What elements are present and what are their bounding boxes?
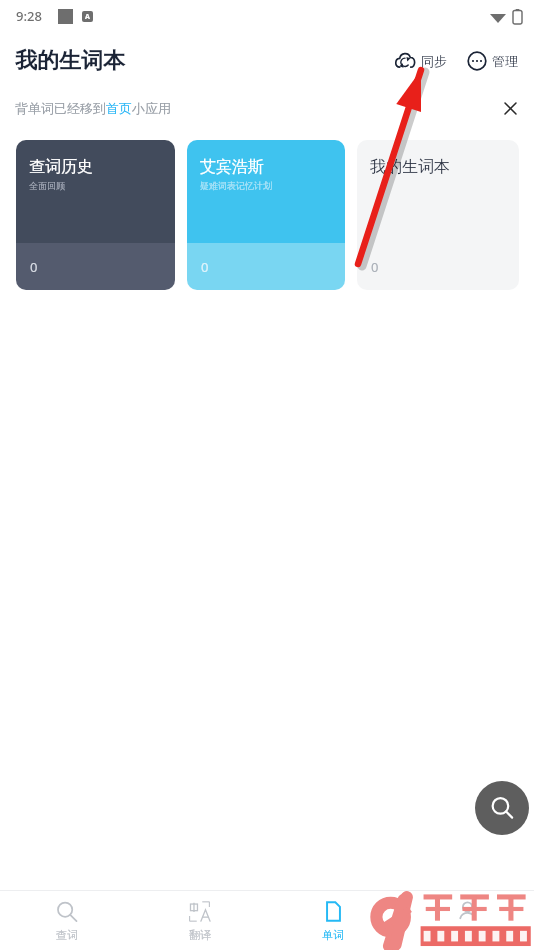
button[interactable]: 我的 bbox=[400, 891, 534, 950]
staticText: 查词 bbox=[56, 928, 78, 942]
button[interactable]: 查词 bbox=[0, 891, 133, 950]
staticText: 0 bbox=[201, 258, 209, 276]
staticText: 0 bbox=[30, 258, 38, 276]
button[interactable]: 翻译 bbox=[133, 891, 266, 950]
staticText: 我的 bbox=[456, 928, 478, 942]
staticText: 我的生词本 bbox=[370, 157, 450, 177]
staticText: 0 bbox=[371, 258, 379, 276]
staticText: 管理 bbox=[492, 53, 518, 69]
staticText: 全面回顾 bbox=[29, 180, 65, 191]
staticText: A bbox=[85, 12, 90, 22]
button[interactable]: 管理 bbox=[464, 47, 521, 75]
button[interactable]: 同步 bbox=[391, 46, 450, 76]
staticText: 小应用 bbox=[132, 100, 171, 116]
staticText: 翻译 bbox=[189, 928, 211, 942]
button[interactable]: 查词历史 bbox=[16, 140, 175, 290]
staticText: 单词 bbox=[322, 928, 344, 942]
button[interactable]: 我的生词本 bbox=[357, 140, 519, 290]
button[interactable]: Close bbox=[494, 92, 526, 124]
staticText: 同步 bbox=[421, 53, 447, 69]
staticText: 背单词已经移到 bbox=[15, 100, 106, 116]
staticText: 艾宾浩斯 bbox=[200, 157, 264, 177]
staticText: 9:28 bbox=[16, 7, 42, 25]
staticText: 查词历史 bbox=[29, 157, 93, 177]
button[interactable]: Search bbox=[475, 781, 529, 835]
button[interactable]: 首页 bbox=[106, 100, 132, 116]
button[interactable]: 艾宾浩斯 bbox=[187, 140, 345, 290]
staticText: 我的生词本 bbox=[15, 47, 125, 75]
staticText: 疑难词表记忆计划 bbox=[200, 180, 272, 191]
button[interactable]: 单词 bbox=[266, 891, 400, 950]
